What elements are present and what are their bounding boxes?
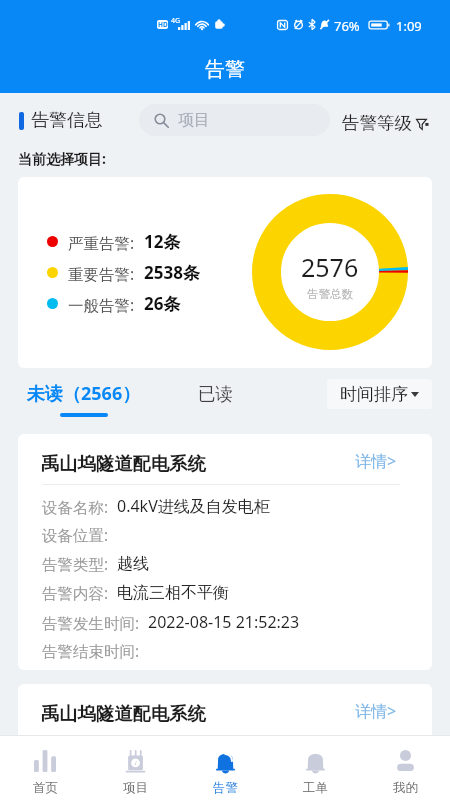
button[interactable]: 已读 [198, 383, 233, 405]
staticText: 当前选择项目: [18, 149, 106, 168]
staticText: 告警发生时间: [42, 612, 140, 633]
staticText: 未读（2566） [27, 381, 141, 406]
staticText: 一般告警: [68, 294, 135, 315]
staticText: 76% [334, 17, 360, 35]
staticText: 严重告警: [68, 232, 135, 253]
button[interactable]: 工单 [270, 736, 360, 800]
button[interactable]: 告警 [180, 736, 270, 800]
staticText: 2576 [301, 250, 359, 284]
staticText: 1:09 [396, 17, 422, 35]
staticText: 详情> [355, 450, 397, 472]
button[interactable]: 告警等级 [342, 112, 429, 134]
staticText: 告警 [205, 57, 245, 82]
staticText: 首页 [33, 780, 58, 796]
staticText: 2538条 [144, 261, 200, 284]
staticText: 禹山坞隧道配电系统 [41, 702, 206, 725]
staticText: 12条 [144, 230, 181, 253]
button[interactable]: 我的 [360, 736, 450, 800]
staticText: 越线 [117, 554, 149, 574]
staticText: HD [158, 20, 168, 29]
button[interactable]: 禹山坞隧道配电系统 [18, 684, 432, 774]
button[interactable]: 禹山坞隧道配电系统 [18, 434, 432, 670]
staticText: 我的 [393, 780, 418, 796]
button[interactable]: 告警信息 [19, 109, 103, 132]
staticText: 设备位置: [42, 524, 109, 545]
staticText: 告警内容: [42, 582, 109, 603]
staticText: 告警类型: [42, 553, 109, 574]
staticText: 告警 [213, 780, 238, 796]
button[interactable]: 项目 [90, 736, 180, 800]
staticText: 项目 [123, 780, 148, 796]
staticText: 2022-08-15 21:52:23 [148, 611, 300, 633]
button[interactable]: 时间排序 [327, 379, 432, 409]
staticText: 0.4kV进线及自发电柜 [117, 495, 270, 517]
button[interactable]: 首页 [0, 736, 90, 800]
staticText: 告警结束时间: [42, 640, 140, 661]
staticText: 告警总数 [307, 287, 353, 301]
staticText: 重要告警: [68, 263, 135, 284]
staticText: 详情> [355, 700, 397, 722]
staticText: 电流三相不平衡 [117, 583, 229, 603]
staticText: 26条 [144, 292, 181, 315]
staticText: 告警等级 [342, 112, 412, 134]
staticText: 设备名称: [42, 496, 109, 517]
staticText: 项目 [178, 110, 210, 130]
button[interactable]: 项目 [139, 104, 330, 136]
staticText: 工单 [303, 780, 328, 796]
staticText: 4G [171, 16, 181, 26]
staticText: 告警信息 [31, 109, 103, 132]
staticText: 禹山坞隧道配电系统 [41, 452, 206, 475]
staticText: 时间排序 [340, 384, 408, 405]
button[interactable]: 未读（2566） [27, 381, 141, 417]
